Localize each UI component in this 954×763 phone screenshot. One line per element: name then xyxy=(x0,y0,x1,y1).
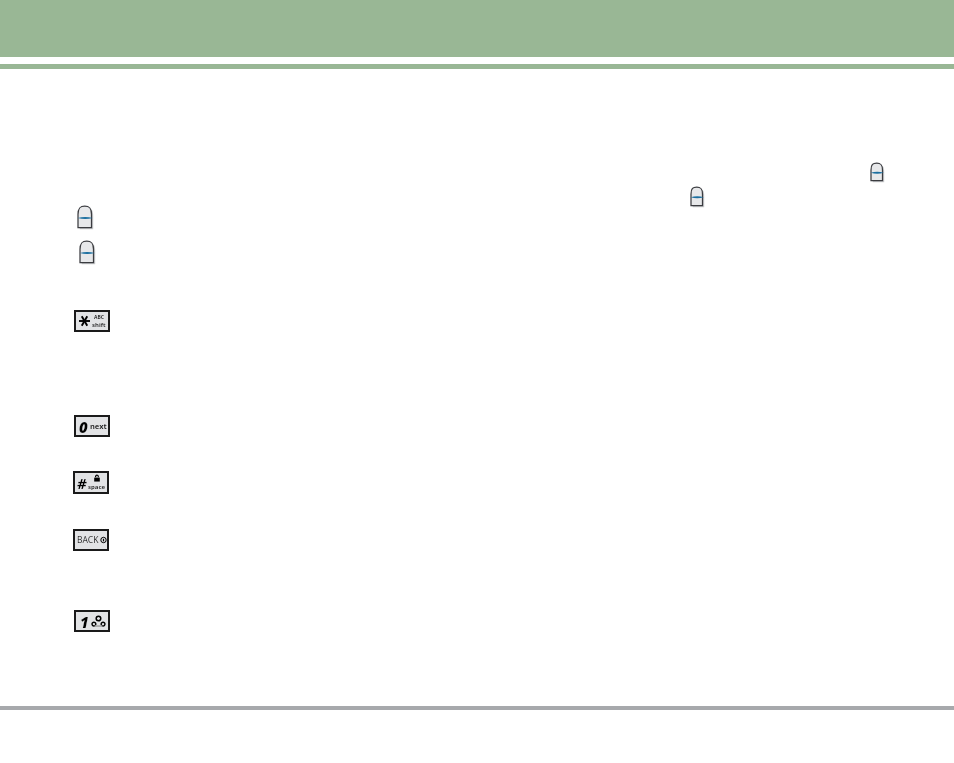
staticText: ABC xyxy=(94,314,104,321)
button[interactable]: Soft key xyxy=(79,240,96,265)
button[interactable]: Zero next key xyxy=(74,415,110,437)
button[interactable]: Hash space key xyxy=(73,471,109,494)
staticText: 1 xyxy=(80,612,89,630)
staticText: next xyxy=(90,421,107,431)
button[interactable]: One key xyxy=(74,610,110,632)
staticText: shift xyxy=(92,321,106,329)
button[interactable]: Back key xyxy=(73,529,109,551)
button[interactable]: Star shift key xyxy=(74,310,110,332)
staticText: BACK xyxy=(77,534,99,546)
button[interactable]: Soft key xyxy=(870,162,885,183)
staticText: # xyxy=(77,473,87,492)
button[interactable]: Soft key xyxy=(77,205,94,230)
staticText: space xyxy=(88,483,106,491)
button[interactable]: Soft key xyxy=(690,186,705,208)
staticText: 0 xyxy=(79,417,88,435)
